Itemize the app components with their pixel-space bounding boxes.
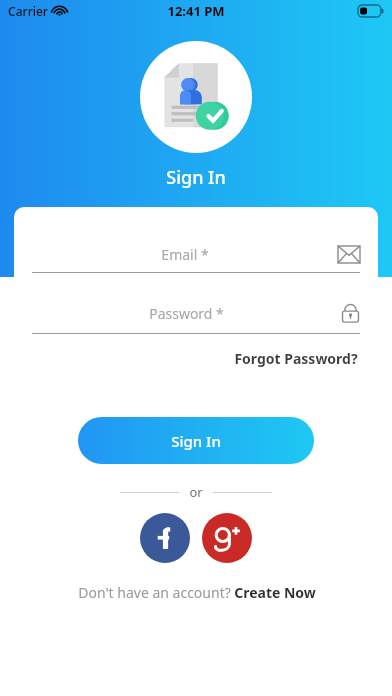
button[interactable]: Sign in with Google Plus — [202, 513, 252, 563]
button[interactable]: Sign in with Facebook — [140, 513, 190, 563]
staticText: Sign In — [166, 165, 226, 190]
button[interactable]: Create Now — [233, 580, 317, 605]
button[interactable]: Sign In — [78, 417, 314, 464]
button[interactable]: Email * — [32, 245, 360, 273]
staticText: Sign In — [171, 431, 221, 451]
button[interactable]: Password * — [32, 301, 360, 334]
staticText: Don't have an account? — [76, 583, 233, 602]
staticText: or — [189, 483, 203, 501]
button[interactable]: Forgot Password? — [232, 346, 360, 371]
staticText: 12:41 PM — [167, 2, 225, 20]
staticText: Email * — [32, 245, 338, 264]
staticText: Forgot Password? — [234, 349, 358, 368]
staticText: Password * — [32, 304, 341, 323]
staticText: Carrier — [8, 3, 48, 19]
staticText: Create Now — [234, 583, 316, 602]
